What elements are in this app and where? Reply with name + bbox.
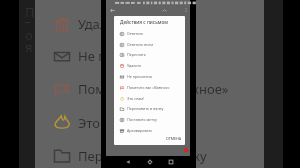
button[interactable]: Пометить как «Важное» — [35, 76, 264, 102]
button[interactable]: Back — [125, 159, 131, 165]
button[interactable]: Переслать — [114, 49, 185, 60]
staticText: Поставить метку — [127, 117, 157, 122]
staticText: Действия с письмом — [120, 19, 168, 25]
staticText: Переложить в папку — [78, 147, 207, 165]
button[interactable]: Home — [147, 159, 153, 165]
button[interactable]: Back — [109, 7, 116, 14]
staticText: П — [25, 3, 35, 21]
staticText: Это спам! — [78, 114, 139, 132]
button[interactable]: Не прочитано — [35, 43, 264, 69]
staticText: Не прочитано — [127, 74, 153, 79]
staticText: Не прочитано — [78, 47, 167, 65]
staticText: Ответить всем — [127, 42, 154, 47]
staticText: Пометить как «Важное» — [127, 85, 170, 90]
staticText: Переложить в папку — [127, 106, 164, 111]
button[interactable]: Ответить всем — [114, 39, 185, 50]
staticText: о — [25, 26, 33, 44]
button[interactable]: Удалить — [35, 11, 264, 37]
button[interactable]: Recents — [168, 159, 174, 165]
staticText: Переслать — [127, 52, 146, 57]
staticText: Удалить — [78, 15, 129, 33]
staticText: Удалить — [127, 63, 142, 68]
button[interactable]: Архивировать — [114, 125, 185, 136]
staticText: я — [25, 38, 33, 56]
button[interactable]: Переложить в папку — [114, 103, 185, 114]
staticText: Архивировать — [127, 128, 153, 133]
button[interactable]: Не прочитано — [114, 71, 185, 82]
button[interactable]: Compose — [184, 148, 188, 152]
staticText: ОТМЕНА — [166, 136, 182, 141]
button[interactable]: Переложить в папку — [35, 143, 264, 168]
button[interactable]: Это спам! — [35, 110, 264, 136]
button[interactable]: Collapse — [161, 7, 168, 14]
button[interactable]: Удалить — [114, 60, 185, 71]
button[interactable]: More options — [183, 7, 189, 13]
button[interactable]: Это спам! — [114, 93, 185, 104]
button[interactable]: ОТМЕНА — [164, 134, 184, 143]
button[interactable]: Поставить метку — [114, 114, 185, 125]
staticText: Пометить как «Важное» — [78, 80, 229, 98]
staticText: Ответить — [127, 31, 144, 36]
staticText: Это спам! — [127, 96, 145, 101]
button[interactable]: Ответить — [114, 28, 185, 39]
button[interactable]: Пометить как «Важное» — [114, 82, 185, 93]
